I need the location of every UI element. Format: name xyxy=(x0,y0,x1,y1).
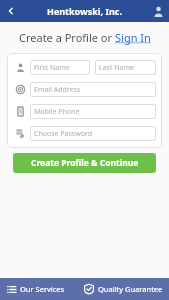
staticText: Create a Profile or xyxy=(19,30,115,45)
staticText: Choose Password xyxy=(34,129,93,139)
button[interactable]: First Name xyxy=(30,60,90,75)
staticText: Email Address xyxy=(34,85,81,95)
button[interactable]: Sign In xyxy=(115,30,151,45)
button[interactable]: Account xyxy=(147,0,169,22)
staticText: Hentkowski, Inc. xyxy=(47,5,122,17)
button[interactable]: Mobile Phone xyxy=(30,104,156,119)
staticText: Our Services xyxy=(20,284,65,294)
button[interactable]: Our Services xyxy=(0,278,84,300)
button[interactable]: Last Name xyxy=(95,60,156,75)
button[interactable]: Email Address xyxy=(30,82,156,97)
button[interactable]: Quality Guarantee xyxy=(84,278,169,300)
button[interactable]: Create Profile & Continue xyxy=(13,153,156,173)
staticText: Mobile Phone xyxy=(34,107,80,117)
staticText: Create Profile & Continue xyxy=(31,157,139,169)
button[interactable]: Choose Password xyxy=(30,126,156,141)
staticText: Quality Guarantee xyxy=(98,284,163,294)
staticText: Last Name xyxy=(99,63,135,73)
staticText: First Name xyxy=(34,63,70,73)
staticText: Sign In xyxy=(115,30,151,45)
button[interactable]: Back xyxy=(0,0,22,22)
